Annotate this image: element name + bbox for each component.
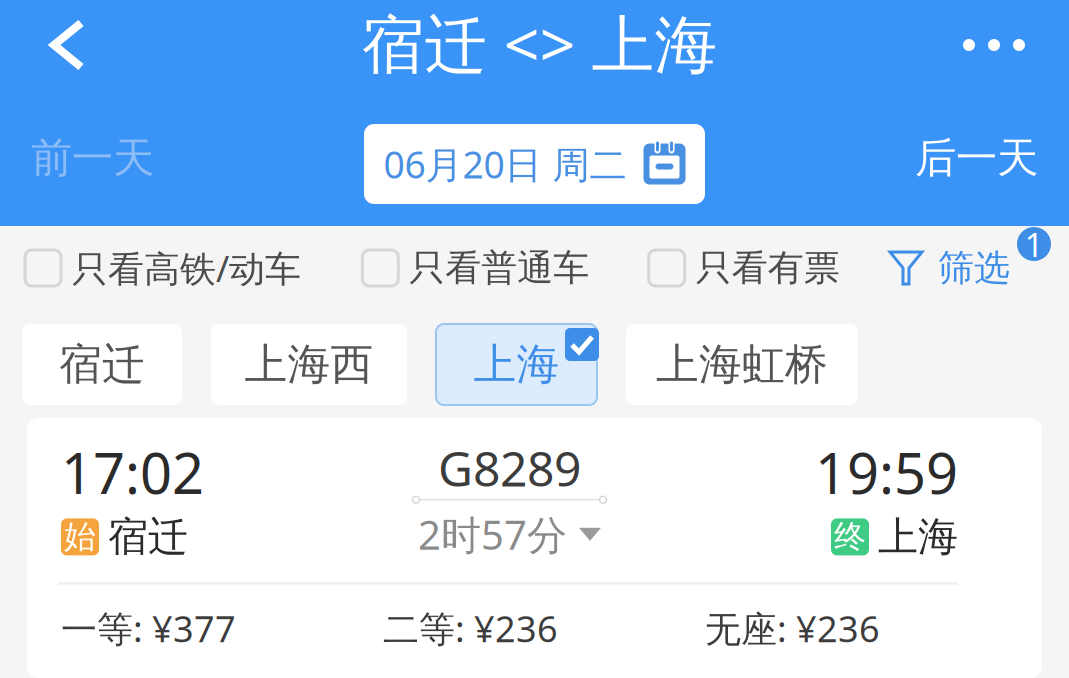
button[interactable]: 宿迁: [22, 324, 182, 405]
staticText: 上海虹桥: [656, 338, 828, 391]
button[interactable]: 17:02: [27, 418, 1042, 678]
staticText: 19:59: [815, 435, 958, 509]
button[interactable]: Back: [0, 2, 111, 88]
staticText: 上海: [878, 512, 958, 561]
staticText: 始: [64, 517, 96, 557]
staticText: 宿迁 <> 上海: [361, 1, 717, 85]
button[interactable]: 只看高铁/动车: [17, 225, 309, 311]
staticText: G8289: [438, 436, 581, 500]
button[interactable]: 筛选: [880, 226, 1069, 310]
staticText: 上海: [473, 338, 559, 391]
staticText: 宿迁: [59, 338, 145, 391]
staticText: 只看普通车: [409, 246, 589, 290]
button[interactable]: More options: [939, 0, 1069, 90]
staticText: 只看高铁/动车: [72, 244, 301, 292]
staticText: 上海西: [244, 338, 373, 391]
staticText: 前一天: [31, 133, 154, 183]
staticText: 终: [834, 517, 866, 557]
staticText: 无座: ¥236: [705, 604, 880, 652]
staticText: 二等: ¥236: [383, 604, 558, 652]
button[interactable]: 上海西: [211, 324, 407, 405]
staticText: 筛选: [938, 246, 1010, 290]
staticText: 06月20日 周二: [383, 139, 626, 189]
staticText: 17:02: [61, 435, 204, 509]
button[interactable]: 上海虹桥: [626, 324, 858, 405]
button[interactable]: 前一天: [0, 118, 185, 198]
button[interactable]: 只看普通车: [354, 225, 597, 311]
button[interactable]: 06月20日 周二: [364, 112, 705, 204]
button[interactable]: 后一天: [884, 118, 1069, 198]
staticText: 一等: ¥377: [61, 604, 236, 652]
staticText: 2时57分: [418, 508, 567, 561]
staticText: 宿迁: [108, 512, 188, 561]
staticText: 1: [1024, 222, 1043, 266]
button[interactable]: 上海: [436, 324, 597, 405]
staticText: 后一天: [915, 133, 1038, 183]
button[interactable]: 只看有票: [641, 225, 848, 311]
staticText: 只看有票: [696, 246, 840, 290]
